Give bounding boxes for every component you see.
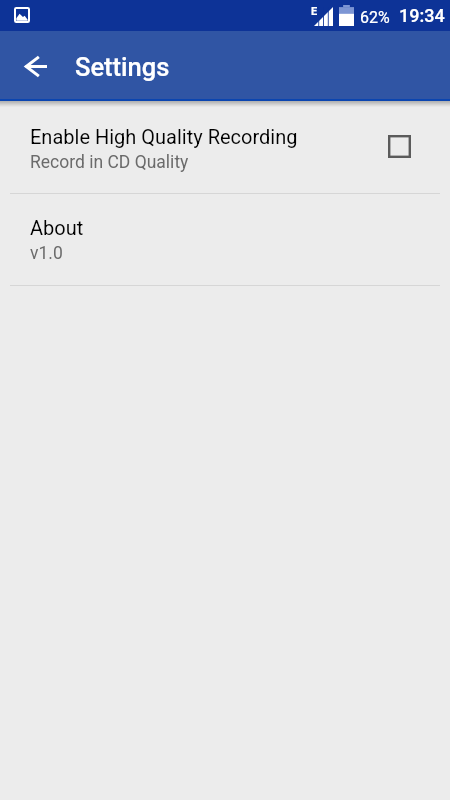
button[interactable]: Enable High Quality Recording	[377, 124, 421, 168]
staticText: E	[311, 5, 318, 18]
staticText: About	[30, 216, 84, 239]
staticText: Record in CD Quality	[30, 152, 189, 173]
button[interactable]: About	[0, 194, 450, 285]
staticText: 19:34	[399, 5, 445, 26]
button[interactable]: Back	[12, 42, 60, 90]
staticText: v1.0	[30, 243, 63, 264]
staticText: 62%	[360, 8, 390, 27]
staticText: Enable High Quality Recording	[30, 125, 298, 148]
staticText: Settings	[75, 52, 170, 82]
button[interactable]: Enable High Quality Recording	[0, 110, 450, 193]
